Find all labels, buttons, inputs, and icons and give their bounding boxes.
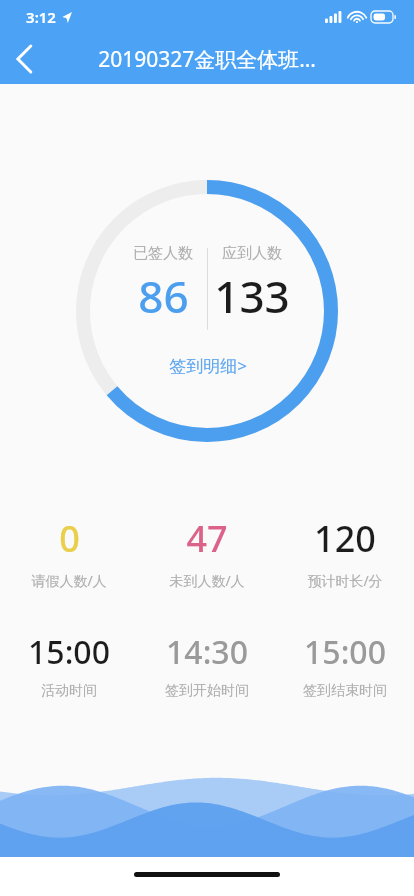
- staticText: 签到结束时间: [303, 682, 387, 700]
- button[interactable]: 15:00: [276, 628, 414, 702]
- staticText: 签到开始时间: [165, 682, 249, 700]
- staticText: 签到明细>: [169, 354, 247, 377]
- staticText: 120: [314, 514, 376, 563]
- staticText: 预计时长/分: [307, 571, 383, 590]
- staticText: 活动时间: [41, 682, 97, 700]
- button[interactable]: 120: [276, 512, 414, 592]
- staticText: 请假人数/人: [31, 571, 107, 590]
- staticText: 未到人数/人: [169, 571, 245, 590]
- staticText: 20190327金职全体班…: [98, 45, 316, 74]
- staticText: 已签人数: [133, 244, 193, 263]
- button[interactable]: 47: [138, 512, 276, 592]
- button[interactable]: 签到明细>: [161, 352, 255, 379]
- staticText: 47: [186, 514, 228, 563]
- staticText: 133: [214, 266, 290, 326]
- staticText: 15:00: [304, 630, 386, 674]
- staticText: 15:00: [28, 630, 110, 674]
- button[interactable]: 0: [0, 512, 138, 592]
- button[interactable]: 15:00: [0, 628, 138, 702]
- staticText: 0: [59, 514, 80, 563]
- button[interactable]: Back: [0, 35, 48, 83]
- staticText: 86: [138, 266, 189, 326]
- staticText: 应到人数: [222, 244, 282, 263]
- button[interactable]: 14:30: [138, 628, 276, 702]
- staticText: 3:12: [26, 7, 56, 27]
- staticText: 14:30: [166, 630, 248, 674]
